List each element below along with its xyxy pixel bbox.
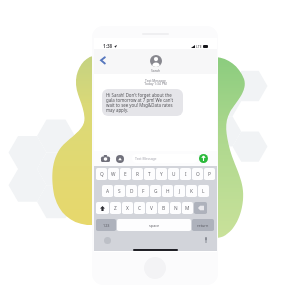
staticText: U bbox=[172, 171, 176, 178]
staticText: Hi Sarah! Don't forget about the gala to… bbox=[106, 92, 179, 113]
staticText: P bbox=[208, 171, 211, 178]
button[interactable]: space bbox=[117, 219, 191, 231]
button[interactable]: Home bbox=[144, 257, 166, 279]
button[interactable]: D bbox=[126, 185, 137, 197]
staticText: Text Message bbox=[135, 156, 157, 161]
staticText: W bbox=[111, 171, 116, 178]
button[interactable]: V bbox=[146, 202, 157, 214]
button[interactable]: J bbox=[174, 185, 185, 197]
staticText: Sarah bbox=[151, 68, 161, 73]
button[interactable]: S bbox=[114, 185, 125, 197]
button[interactable]: O bbox=[192, 168, 203, 180]
staticText: L bbox=[202, 188, 205, 195]
button[interactable]: Camera bbox=[101, 155, 110, 162]
staticText: G bbox=[154, 188, 158, 195]
staticText: Text Message Today 1:34 PM bbox=[94, 78, 217, 86]
button[interactable]: K bbox=[186, 185, 197, 197]
staticText: 123 bbox=[103, 223, 110, 228]
staticText: C bbox=[138, 205, 142, 212]
button[interactable]: P bbox=[204, 168, 215, 180]
button[interactable]: X bbox=[122, 202, 133, 214]
staticText: V bbox=[150, 205, 153, 212]
staticText: R bbox=[136, 171, 139, 178]
button[interactable]: Y bbox=[156, 168, 167, 180]
staticText: space bbox=[149, 223, 160, 228]
button[interactable]: Back bbox=[96, 51, 108, 63]
staticText: I bbox=[185, 171, 187, 178]
button[interactable]: Q bbox=[96, 168, 107, 180]
button[interactable]: Shift bbox=[96, 202, 109, 214]
button[interactable]: I bbox=[180, 168, 191, 180]
staticText: A bbox=[106, 188, 110, 195]
button[interactable]: N bbox=[170, 202, 181, 214]
staticText: O bbox=[196, 171, 200, 178]
staticText: E bbox=[124, 171, 127, 178]
button[interactable]: A bbox=[102, 185, 113, 197]
button[interactable]: L bbox=[198, 185, 209, 197]
staticText: Z bbox=[114, 205, 117, 212]
staticText: H bbox=[166, 188, 170, 195]
staticText: LTE bbox=[196, 44, 202, 49]
staticText: M bbox=[185, 205, 190, 212]
staticText: X bbox=[126, 205, 129, 212]
button[interactable]: U bbox=[168, 168, 179, 180]
button[interactable]: Dictate bbox=[204, 237, 208, 243]
button[interactable]: return bbox=[192, 219, 214, 231]
button[interactable]: F bbox=[138, 185, 149, 197]
button[interactable]: Apps bbox=[116, 155, 124, 163]
staticText: return bbox=[197, 223, 209, 228]
button[interactable]: Z bbox=[110, 202, 121, 214]
button[interactable]: G bbox=[150, 185, 161, 197]
button[interactable]: W bbox=[108, 168, 119, 180]
button[interactable]: Send bbox=[199, 154, 208, 163]
staticText: T bbox=[148, 171, 151, 178]
staticText: N bbox=[174, 205, 178, 212]
button[interactable]: T bbox=[144, 168, 155, 180]
button[interactable]: B bbox=[158, 202, 169, 214]
staticText: 1:38 bbox=[103, 43, 113, 49]
staticText: D bbox=[130, 188, 134, 195]
staticText: F bbox=[142, 188, 145, 195]
staticText: K bbox=[190, 188, 193, 195]
staticText: Y bbox=[160, 171, 163, 178]
button[interactable]: E bbox=[120, 168, 131, 180]
staticText: S bbox=[118, 188, 121, 195]
staticText: Q bbox=[100, 171, 104, 178]
button[interactable]: Delete bbox=[194, 202, 207, 214]
button[interactable]: R bbox=[132, 168, 143, 180]
staticText: J bbox=[179, 188, 181, 195]
button[interactable]: M bbox=[182, 202, 193, 214]
button[interactable]: H bbox=[162, 185, 173, 197]
button[interactable]: C bbox=[134, 202, 145, 214]
staticText: B bbox=[162, 205, 166, 212]
button[interactable]: Text Message bbox=[135, 154, 195, 163]
button[interactable]: 123 bbox=[96, 219, 116, 231]
button[interactable]: Emoji bbox=[104, 237, 111, 244]
